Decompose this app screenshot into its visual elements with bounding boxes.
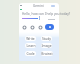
staticText: Images (41, 43, 52, 48)
button[interactable]: Account (51, 5, 55, 7)
staticText: Brainstorm (41, 51, 53, 56)
staticText: Write (26, 36, 35, 41)
button[interactable]: Tools (38, 25, 43, 30)
button[interactable]: Brainstorm (41, 51, 53, 56)
staticText: Study (42, 36, 51, 41)
staticText: Code (26, 51, 35, 56)
button[interactable]: Attach (22, 25, 27, 30)
staticText: Hello, how can I help you today? (22, 12, 71, 16)
button[interactable]: Send (45, 24, 54, 30)
button[interactable]: Images (41, 43, 52, 48)
staticText: Learn (26, 43, 36, 48)
button[interactable]: Photos (30, 25, 35, 30)
button[interactable]: Learn (25, 43, 36, 48)
button[interactable]: Write (25, 36, 36, 41)
button[interactable]: Gemini (33, 4, 44, 8)
button[interactable]: Study (41, 36, 52, 41)
button[interactable]: Code (25, 51, 36, 56)
